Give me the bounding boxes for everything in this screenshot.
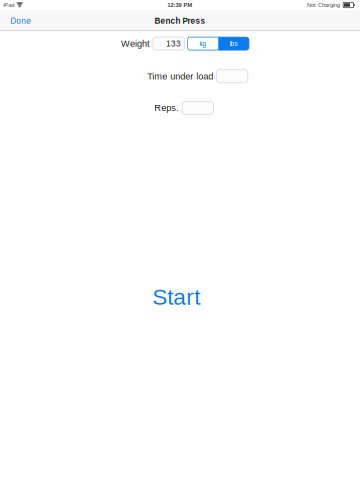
staticText: Start <box>152 284 200 309</box>
staticText: Done <box>10 16 31 26</box>
button[interactable]: Time under load <box>216 70 248 83</box>
button[interactable]: Start <box>146 280 206 313</box>
staticText: Bench Press <box>154 16 205 26</box>
button[interactable]: Reps. <box>182 101 214 114</box>
button[interactable]: kg <box>188 37 218 50</box>
staticText: lbs <box>230 40 238 47</box>
staticText: Time under load <box>147 71 213 81</box>
staticText: Reps. <box>154 103 179 113</box>
button[interactable]: lbs <box>218 37 249 50</box>
staticText: iPad <box>3 2 14 8</box>
staticText: kg <box>199 40 206 47</box>
button[interactable]: Done <box>0 11 42 29</box>
staticText: Weight <box>121 38 150 49</box>
staticText: 12:39 PM <box>167 2 192 8</box>
staticText: 133 <box>166 39 181 48</box>
staticText: Not Charging <box>307 2 340 8</box>
button[interactable]: Weight <box>153 37 185 50</box>
